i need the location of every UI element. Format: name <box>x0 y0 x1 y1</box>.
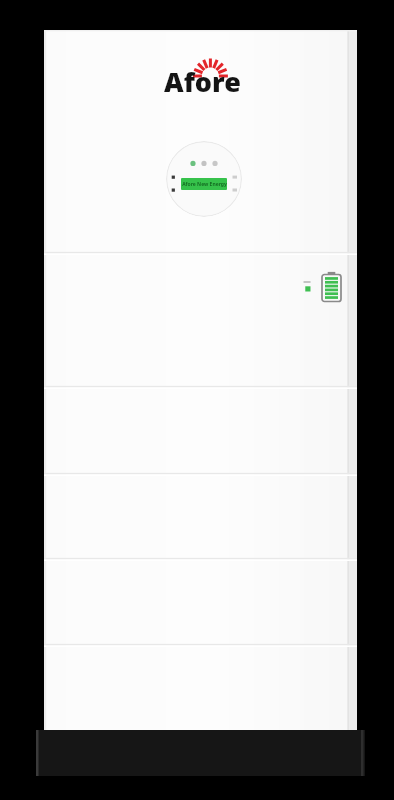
staticText: Afore New Energy <box>182 181 227 188</box>
button[interactable]: Afore New Energy <box>181 178 227 190</box>
other: Battery level indicator <box>300 271 344 305</box>
other: Afore logo <box>160 52 244 100</box>
button[interactable]: Inverter control panel <box>166 141 242 217</box>
staticText: Afore <box>164 63 241 100</box>
